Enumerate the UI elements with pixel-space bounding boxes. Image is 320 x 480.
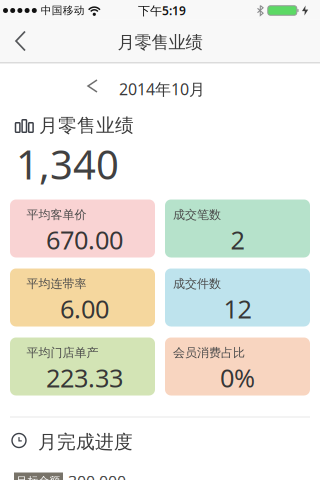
staticText: 月零售业绩 xyxy=(39,114,134,137)
button[interactable]: 平均连带率 xyxy=(10,268,155,326)
staticText: 平均门店单产 xyxy=(26,345,98,360)
staticText: 月完成进度 xyxy=(38,430,133,453)
button[interactable]: 返回 xyxy=(0,18,26,63)
staticText: 2 xyxy=(230,223,244,256)
staticText: 下午5:19 xyxy=(138,2,186,18)
staticText: 6.00 xyxy=(60,292,109,325)
staticText: 成交笔数 xyxy=(173,207,221,222)
staticText: 平均客单价 xyxy=(26,207,86,222)
staticText: 中国移动 xyxy=(41,4,85,17)
staticText: 12 xyxy=(223,292,251,325)
staticText: 1,340 xyxy=(16,137,119,190)
staticText: 月零售业绩 xyxy=(117,32,202,53)
button[interactable]: 平均门店单产 xyxy=(10,337,155,395)
staticText: 成交件数 xyxy=(173,276,221,291)
button[interactable]: 成交件数 xyxy=(165,268,310,326)
staticText: 0% xyxy=(220,361,255,394)
button[interactable]: 上个月 xyxy=(0,78,320,100)
staticText: 2014年10月 xyxy=(119,78,205,100)
staticText: 670.00 xyxy=(46,223,123,256)
staticText: 300,000 xyxy=(68,471,126,480)
staticText: 会员消费占比 xyxy=(173,345,245,360)
button[interactable]: 平均客单价 xyxy=(10,199,155,257)
staticText: 目标金额 xyxy=(16,474,60,480)
button[interactable]: 会员消费占比 xyxy=(165,337,310,395)
button[interactable]: 成交笔数 xyxy=(165,199,310,257)
staticText: 223.33 xyxy=(46,361,123,394)
staticText: 平均连带率 xyxy=(26,276,86,291)
